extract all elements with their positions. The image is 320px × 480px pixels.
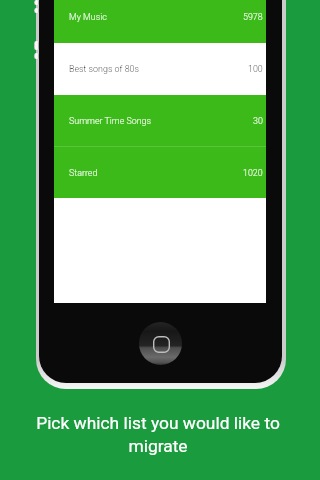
staticText: 5978 [243, 12, 263, 22]
staticText: 1020 [243, 168, 263, 178]
staticText: 30 [253, 116, 263, 126]
staticText: 100 [248, 64, 263, 74]
staticText: My Music [69, 12, 107, 22]
button[interactable]: Best songs of 80s [54, 43, 266, 95]
button[interactable]: Summer Time Songs [54, 95, 266, 147]
staticText: Starred [69, 168, 98, 178]
button[interactable]: Starred [54, 147, 266, 198]
button[interactable]: My Music [54, 0, 266, 43]
staticText: Pick which list you would like to migrat… [0, 413, 318, 456]
staticText: Summer Time Songs [69, 116, 152, 126]
button[interactable]: Home [139, 322, 182, 365]
staticText: Best songs of 80s [69, 64, 140, 74]
